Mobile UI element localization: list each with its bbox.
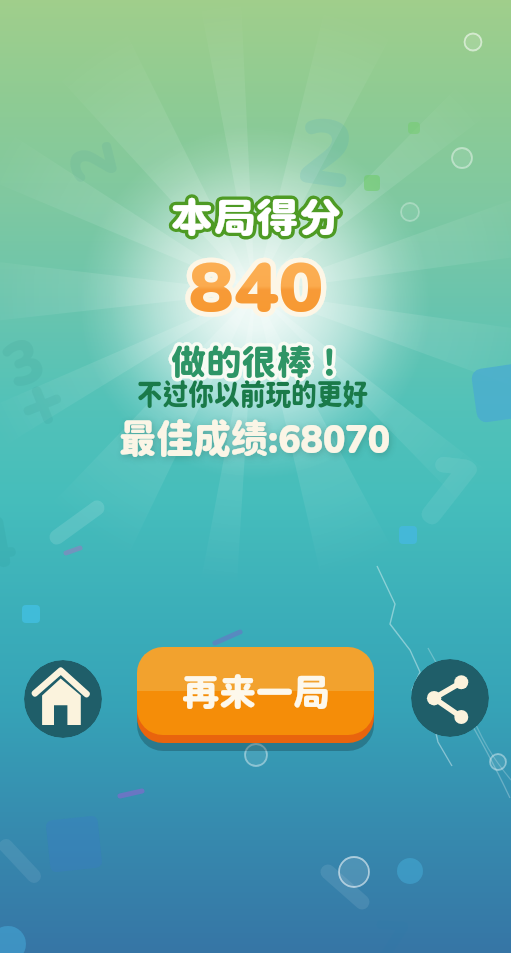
staticText: 最佳成绩:68070 [119, 414, 390, 461]
staticText: 不过你以前玩的更好 [137, 377, 368, 411]
staticText: 840 [188, 246, 324, 326]
staticText: 840 [188, 246, 324, 326]
staticText: 3 [0, 319, 54, 401]
staticText: 本局得分 [171, 193, 341, 240]
staticText: 4 [0, 497, 21, 586]
staticText: 1 [383, 418, 508, 553]
button[interactable]: 再来一局 [137, 647, 374, 751]
staticText: 做的很棒！ [171, 341, 347, 383]
staticText: 2 [291, 93, 361, 208]
staticText: 本局得分 [171, 193, 341, 240]
staticText: + [0, 346, 78, 449]
staticText: 再来一局 [182, 670, 330, 714]
button[interactable]: Home [24, 660, 102, 738]
staticText: 做的很棒！ [171, 341, 347, 383]
staticText: 2 [51, 135, 131, 190]
button[interactable]: Share [411, 659, 489, 737]
